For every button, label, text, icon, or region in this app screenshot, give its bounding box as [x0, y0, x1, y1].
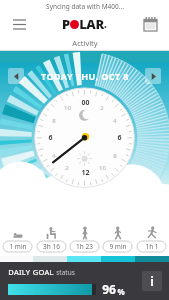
staticText: status [56, 268, 75, 277]
button[interactable]: Standing [69, 226, 100, 252]
staticText: 8 [113, 152, 117, 160]
staticText: Activity [72, 38, 98, 48]
staticText: 4 [113, 117, 117, 125]
staticText: 8 [52, 117, 56, 125]
staticText: 96 [102, 281, 116, 297]
button[interactable]: Resting [2, 226, 33, 252]
staticText: 1h 1 [145, 242, 159, 251]
staticText: Syncing data with M400... [46, 2, 124, 11]
staticText: 6 [48, 133, 53, 142]
staticText: DAILY GOAL [8, 267, 54, 277]
button[interactable]: Running [136, 226, 167, 252]
button[interactable]: Next day [145, 68, 161, 84]
button[interactable]: Activity [0, 36, 169, 50]
staticText: 10 [99, 164, 106, 172]
staticText: % [117, 286, 125, 297]
staticText: 1h 23 [76, 242, 93, 251]
staticText: 00 [81, 98, 90, 107]
staticText: TODAY THU, OCT 8 [41, 70, 129, 82]
staticText: 10 [64, 104, 71, 112]
staticText: P [62, 15, 70, 33]
button[interactable]: P [62, 15, 107, 33]
staticText: 2 [65, 164, 69, 172]
staticText: 2 [100, 104, 104, 112]
button[interactable]: Walking [102, 226, 133, 252]
button[interactable]: Calendar [137, 12, 163, 36]
staticText: 12 [81, 168, 90, 177]
button[interactable]: Previous day [8, 68, 24, 84]
button[interactable]: Info [142, 271, 162, 291]
button[interactable]: Sitting [36, 226, 67, 252]
button[interactable]: Menu [6, 12, 32, 36]
staticText: 4 [52, 152, 56, 160]
staticText: LAR [79, 15, 104, 33]
staticText: i [150, 273, 154, 289]
staticText: . [104, 17, 107, 31]
staticText: 9 min [109, 242, 127, 251]
staticText: 1 min [9, 242, 27, 251]
staticText: 3h 16 [43, 242, 60, 251]
staticText: 6 [117, 133, 122, 142]
